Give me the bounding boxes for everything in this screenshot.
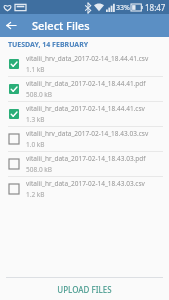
button[interactable]: vitalii_hr_data_2017-02-14_18.43.03.pdf xyxy=(0,152,169,176)
staticText: vitalii_hr_data_2017-02-14_18.43.03.csv xyxy=(26,179,145,188)
staticText: 508.0 kB xyxy=(26,90,53,99)
staticText: 1.2 kB xyxy=(26,190,45,199)
staticText: vitalii_hrv_data_2017-02-14_18.44.41.csv xyxy=(26,54,149,63)
button[interactable]: vitalii_hr_data_2017-02-14_18.44.41.pdf xyxy=(0,77,169,101)
button[interactable]: UPLOAD FILES xyxy=(0,278,169,300)
staticText: Select Files xyxy=(32,18,90,33)
button[interactable]: vitalii_hr_data_2017-02-14_18.43.03.csv xyxy=(0,177,169,201)
staticText: vitalii_hr_data_2017-02-14_18.44.41.pdf xyxy=(26,79,146,88)
staticText: UPLOAD FILES xyxy=(57,284,112,295)
staticText: vitalii_hrv_data_2017-02-14_18.43.03.csv xyxy=(26,129,149,138)
staticText: TUESDAY, 14 FEBRUARY xyxy=(8,40,89,50)
staticText: 18:47 xyxy=(145,2,166,13)
staticText: 508.0 kB xyxy=(26,165,53,174)
staticText: vitalii_hr_data_2017-02-14_18.44.41.csv xyxy=(26,104,145,113)
staticText: 33% xyxy=(116,3,130,13)
staticText: 1.3 kB xyxy=(26,115,45,124)
staticText: 1.1 kB xyxy=(26,65,45,74)
button[interactable]: vitalii_hr_data_2017-02-14_18.44.41.csv xyxy=(0,102,169,126)
button[interactable]: vitalii_hrv_data_2017-02-14_18.43.03.csv xyxy=(0,127,169,151)
staticText: 1.0 kB xyxy=(26,140,45,149)
staticText: vitalii_hr_data_2017-02-14_18.43.03.pdf xyxy=(26,154,146,163)
button[interactable]: Back xyxy=(0,14,23,37)
button[interactable]: vitalii_hrv_data_2017-02-14_18.44.41.csv xyxy=(0,52,169,76)
